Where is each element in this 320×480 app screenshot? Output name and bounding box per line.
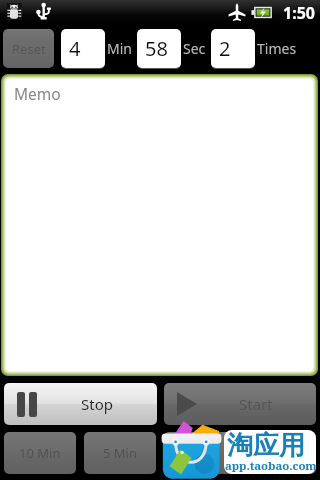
staticText: 10 Min: [19, 444, 61, 462]
staticText: 3 Min: [183, 444, 217, 462]
button[interactable]: Reset: [3, 29, 54, 68]
button[interactable]: Start: [164, 383, 316, 425]
staticText: Start: [239, 394, 273, 414]
button[interactable]: Memo: [6, 79, 313, 371]
staticText: app.taobao.com: [225, 458, 316, 474]
staticText: Times: [257, 39, 297, 58]
staticText: 1 Min: [263, 444, 297, 462]
button[interactable]: 58: [137, 29, 181, 68]
staticText: 淘应用: [227, 430, 305, 462]
button[interactable]: 4: [61, 29, 105, 68]
button[interactable]: 2: [211, 29, 255, 68]
staticText: Stop: [81, 394, 113, 414]
staticText: 1:50: [283, 2, 315, 24]
staticText: 2: [219, 35, 231, 62]
staticText: Min: [107, 39, 132, 58]
button[interactable]: Taobao app store ad: [158, 416, 320, 480]
staticText: Sec: [183, 39, 206, 58]
staticText: 5 Min: [103, 444, 137, 462]
staticText: 4: [69, 35, 81, 62]
staticText: Reset: [12, 40, 46, 58]
button[interactable]: Stop: [4, 383, 157, 425]
button[interactable]: 3 Min: [164, 432, 236, 474]
button[interactable]: 5 Min: [84, 432, 156, 474]
button[interactable]: 1 Min: [244, 432, 316, 474]
staticText: 58: [145, 35, 168, 62]
staticText: Memo: [14, 83, 61, 104]
button[interactable]: 10 Min: [4, 432, 76, 474]
